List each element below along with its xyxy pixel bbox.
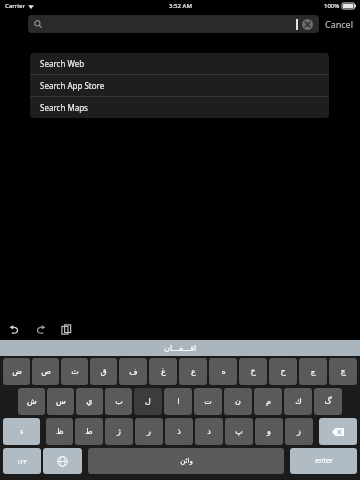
staticText: ر	[147, 427, 151, 436]
staticText: ل	[145, 397, 151, 406]
button[interactable]: ژ	[105, 418, 133, 445]
button[interactable]: Clear text	[28, 15, 319, 33]
button[interactable]: ك	[284, 388, 312, 415]
button[interactable]: Redo	[32, 321, 48, 337]
staticText: ذ	[177, 427, 181, 436]
button[interactable]: ظ	[46, 418, 73, 445]
staticText: ق	[100, 367, 107, 376]
button[interactable]: Search Maps	[30, 97, 329, 118]
button[interactable]: ع	[179, 358, 207, 385]
button[interactable]: افـــغـــان	[0, 340, 360, 356]
staticText: ب	[115, 397, 123, 406]
staticText: Cancel	[325, 18, 354, 30]
button[interactable]: ذ	[165, 418, 193, 445]
staticText: و	[267, 427, 271, 436]
button[interactable]: ف	[119, 358, 147, 385]
button[interactable]: ح	[269, 358, 297, 385]
staticText: ۱۲۳	[17, 458, 27, 465]
staticText: خ	[250, 367, 256, 376]
button[interactable]: ت	[194, 388, 222, 415]
staticText: د	[207, 427, 211, 436]
button[interactable]: ص	[32, 358, 59, 385]
staticText: ت	[204, 397, 212, 406]
staticText: چ	[340, 367, 346, 376]
staticText: ظ	[56, 427, 64, 436]
staticText: Search App Store	[40, 80, 105, 91]
button[interactable]: Search Web	[30, 53, 329, 74]
staticText: ج	[310, 367, 316, 376]
staticText: س	[56, 397, 66, 406]
staticText: ه	[221, 367, 226, 376]
button[interactable]: ب	[105, 388, 132, 415]
staticText: ﺀ	[20, 427, 24, 436]
staticText: ز	[297, 427, 301, 436]
button[interactable]: Search App Store	[30, 75, 329, 96]
button[interactable]: Paste	[58, 321, 74, 337]
button[interactable]: د	[195, 418, 223, 445]
button[interactable]: چ	[329, 358, 357, 385]
button[interactable]: ش	[18, 388, 45, 415]
staticText: Carrier	[5, 2, 25, 10]
button[interactable]: Cancel	[319, 18, 360, 30]
button[interactable]: ج	[299, 358, 327, 385]
button[interactable]: Change keyboard language	[43, 448, 82, 474]
button[interactable]: ق	[90, 358, 117, 385]
button[interactable]: Backspace	[319, 418, 357, 445]
staticText: وائن	[180, 457, 193, 465]
button[interactable]: و	[255, 418, 283, 445]
button[interactable]: ر	[135, 418, 163, 445]
button[interactable]: گ	[314, 388, 342, 415]
button[interactable]: خ	[239, 358, 267, 385]
button[interactable]: ۱۲۳	[3, 448, 41, 474]
staticText: ط	[85, 427, 93, 436]
staticText: ي	[86, 397, 93, 406]
staticText: enter	[315, 456, 333, 466]
button[interactable]: پ	[225, 418, 253, 445]
staticText: Search Maps	[40, 102, 88, 113]
staticText: ك	[295, 397, 302, 406]
staticText: 3:52 AM	[169, 2, 192, 10]
staticText: 100%	[324, 2, 340, 10]
staticText: ف	[129, 367, 138, 376]
staticText: م	[266, 397, 271, 406]
staticText: ع	[191, 367, 196, 376]
staticText: پ	[235, 427, 243, 436]
button[interactable]: م	[254, 388, 282, 415]
staticText: ش	[27, 397, 37, 406]
button[interactable]: ه	[209, 358, 237, 385]
staticText: ا	[177, 397, 180, 406]
button[interactable]: ض	[3, 358, 30, 385]
staticText: ژ	[117, 427, 121, 436]
staticText: ث	[71, 367, 79, 376]
button[interactable]: ا	[164, 388, 192, 415]
button[interactable]: ز	[285, 418, 313, 445]
button[interactable]: ط	[75, 418, 103, 445]
button[interactable]: س	[47, 388, 74, 415]
button[interactable]: ن	[224, 388, 252, 415]
button[interactable]: ث	[61, 358, 88, 385]
staticText: گ	[324, 397, 332, 406]
staticText: ص	[41, 367, 51, 376]
staticText: غ	[161, 367, 166, 376]
button[interactable]: ل	[134, 388, 162, 415]
button[interactable]: ﺀ	[3, 418, 40, 445]
staticText: ن	[235, 397, 241, 406]
staticText: افـــغـــان	[164, 344, 197, 353]
button[interactable]: Clear text	[302, 19, 313, 30]
button[interactable]: Undo	[6, 321, 22, 337]
button[interactable]: وائن	[88, 448, 284, 474]
staticText: ض	[12, 367, 22, 376]
button[interactable]: غ	[149, 358, 177, 385]
staticText: ح	[280, 367, 286, 376]
staticText: Search Web	[40, 58, 85, 69]
button[interactable]: ي	[76, 388, 103, 415]
button[interactable]: enter	[290, 448, 357, 474]
